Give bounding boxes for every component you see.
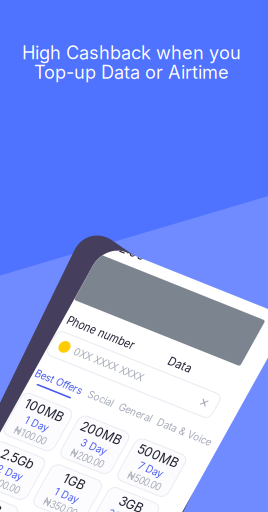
staticText: 30 Day	[176, 507, 208, 512]
staticText: ₦350.00	[175, 470, 209, 481]
staticText: 2 Day	[119, 458, 145, 469]
staticText: ₦300.00	[115, 470, 149, 481]
staticText: 7 Day	[120, 507, 145, 512]
staticText: 1GB	[181, 443, 203, 457]
staticText: ₦200.00	[175, 421, 209, 432]
staticText: Top-up Data or Airtime	[34, 61, 229, 83]
staticText: Phone number	[109, 313, 179, 325]
staticText: 0XX XXXX XXXX	[130, 336, 202, 348]
staticText: 100MB	[112, 394, 152, 408]
staticText: Best Offers	[107, 367, 156, 378]
staticText: ₦100.00	[116, 421, 149, 432]
staticText: 3 Day	[179, 409, 205, 420]
staticText: High Cashback when you	[22, 42, 241, 64]
staticText: 1 Day	[180, 458, 204, 469]
staticText: Social	[162, 367, 188, 378]
staticText: 500MB	[231, 394, 268, 408]
staticText: 12:00	[115, 234, 146, 248]
staticText: 1GB	[121, 492, 143, 506]
staticText: 2.5Gb	[116, 443, 149, 457]
staticText: 200MB	[171, 394, 213, 408]
staticText: 1 Day	[120, 409, 144, 420]
staticText: 5GB	[180, 492, 204, 506]
staticText: Data & Voice	[235, 367, 268, 378]
